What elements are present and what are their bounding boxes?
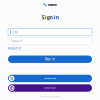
staticText: Sign in [41,14,58,21]
staticText: Sign in [45,57,55,61]
button[interactable]: Sign in [8,55,92,63]
button[interactable]: Forgot it? [8,45,21,50]
staticText: Sign in with Reliant [44,87,56,89]
staticText: Email [12,30,18,34]
button[interactable]: Don't have an account? Sign up [8,96,92,98]
button[interactable]: Sign in with Google [8,75,92,82]
staticText: Don't have an account? Sign up [39,96,60,98]
staticText: wave [48,2,57,7]
button[interactable]: Sign in with Reliant [8,84,92,92]
staticText: or [49,68,51,70]
staticText: Sign in with Google [44,77,56,79]
staticText: Forgot it? [8,47,21,50]
staticText: Password [10,39,22,43]
